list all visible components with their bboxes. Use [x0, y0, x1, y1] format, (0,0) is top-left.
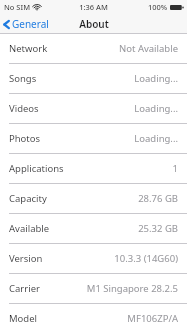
button[interactable]: Applications [0, 154, 187, 183]
staticText: Version [9, 252, 43, 265]
staticText: Available [9, 222, 50, 235]
staticText: 28.76 GB [51, 192, 178, 205]
staticText: Not Available [52, 42, 178, 55]
staticText: 1:36 AM [79, 2, 108, 12]
staticText: 100% [148, 2, 168, 12]
staticText: Model [9, 312, 38, 325]
staticText: MF106ZP/A [42, 312, 178, 325]
staticText: 1 [68, 162, 178, 175]
button[interactable]: Photos [0, 124, 187, 153]
staticText: 10.3.3 (14G60) [47, 252, 178, 265]
staticText: Applications [9, 162, 64, 175]
staticText: M1 Singapore 28.2.5 [44, 282, 178, 295]
button[interactable]: Network [0, 34, 187, 63]
button[interactable]: Carrier [0, 274, 187, 303]
button[interactable]: Version [0, 244, 187, 273]
staticText: Videos [9, 102, 39, 115]
button[interactable]: Model [0, 304, 187, 333]
staticText: Carrier [9, 282, 40, 295]
staticText: Loading... [45, 132, 178, 145]
staticText: 25.32 GB [54, 222, 178, 235]
staticText: Loading... [43, 102, 178, 115]
button[interactable]: Videos [0, 94, 187, 123]
button[interactable]: General [0, 15, 54, 33]
button[interactable]: Capacity [0, 184, 187, 213]
staticText: Loading... [41, 72, 178, 85]
button[interactable]: Songs [0, 64, 187, 93]
staticText: No SIM [4, 2, 31, 12]
staticText: Network [9, 42, 48, 55]
staticText: Photos [9, 132, 41, 145]
staticText: About [79, 17, 109, 31]
staticText: Capacity [9, 192, 47, 205]
button[interactable]: Available [0, 214, 187, 243]
staticText: General [12, 17, 49, 31]
staticText: Songs [9, 72, 37, 85]
